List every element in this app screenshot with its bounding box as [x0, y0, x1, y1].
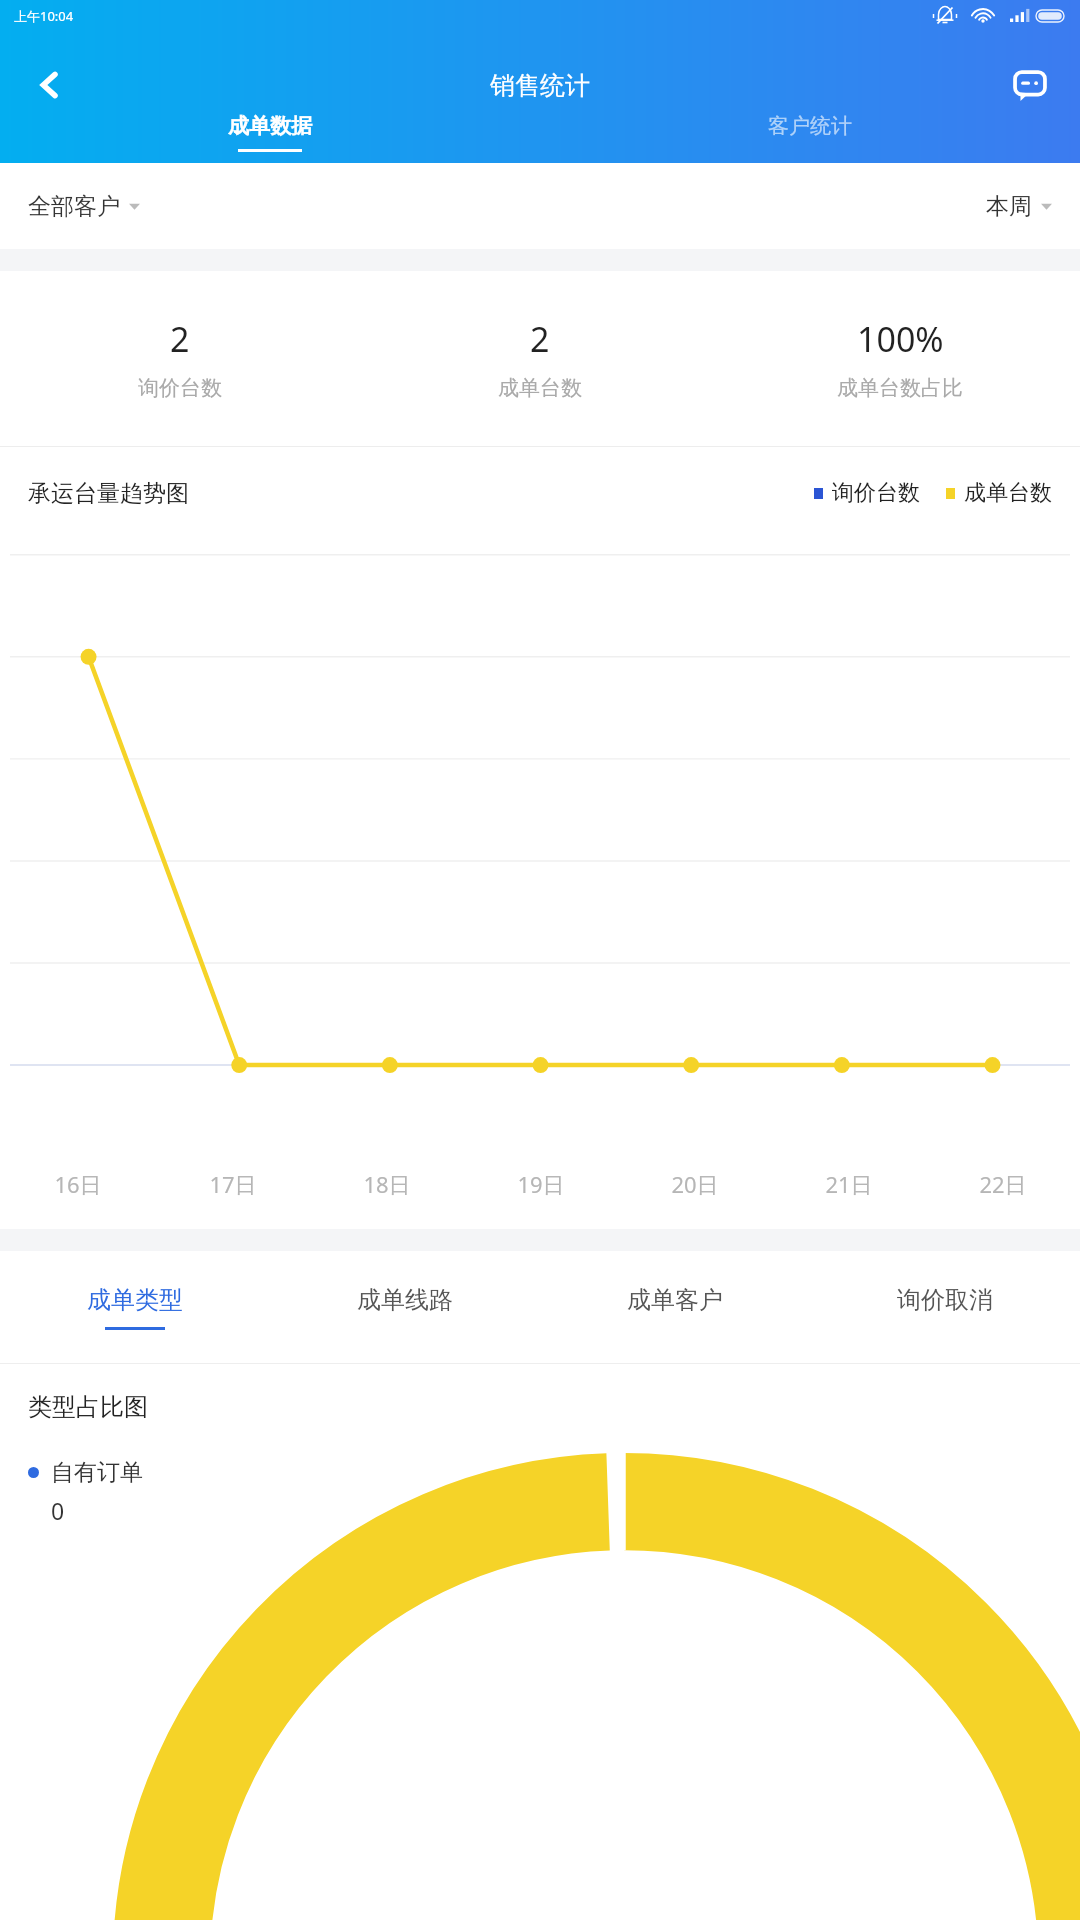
staticText: 本周 [986, 192, 1032, 221]
button[interactable]: Messages [1002, 57, 1058, 113]
button[interactable]: 成单数据 [0, 101, 540, 163]
staticText: 销售统计 [490, 70, 590, 101]
button[interactable]: 客户统计 [540, 101, 1080, 163]
staticText: 16日 [54, 1169, 102, 1199]
staticText: 询价台数 [832, 479, 920, 507]
staticText: 类型占比图 [28, 1392, 148, 1422]
staticText: 19日 [517, 1169, 565, 1199]
button[interactable]: 2 [0, 271, 360, 446]
button[interactable]: 2 [360, 271, 720, 446]
staticText: 22日 [979, 1169, 1027, 1199]
staticText: 2 [170, 316, 190, 362]
staticText: 成单客户 [627, 1285, 723, 1315]
staticText: 17日 [209, 1169, 257, 1199]
staticText: 客户统计 [768, 113, 852, 139]
staticText: 成单类型 [87, 1285, 183, 1315]
staticText: 100% [857, 316, 944, 362]
button[interactable]: 成单线路 [270, 1251, 540, 1363]
staticText: 询价台数 [138, 375, 222, 401]
staticText: 成单台数 [964, 479, 1052, 507]
staticText: 20日 [671, 1169, 719, 1199]
button[interactable]: 询价取消 [810, 1251, 1080, 1363]
staticText: 成单数据 [228, 113, 312, 139]
staticText: 18日 [363, 1169, 411, 1199]
staticText: 自有订单 [51, 1458, 143, 1487]
staticText: 成单台数占比 [837, 375, 963, 401]
staticText: 21日 [825, 1169, 873, 1199]
staticText: 承运台量趋势图 [28, 479, 189, 508]
staticText: 0 [51, 1495, 65, 1526]
staticText: 上午10:04 [14, 7, 74, 25]
staticText: 询价取消 [897, 1285, 993, 1315]
button[interactable]: 成单客户 [540, 1251, 810, 1363]
staticText: 成单线路 [357, 1285, 453, 1315]
button[interactable]: Back [22, 57, 78, 113]
button[interactable]: 本周 [986, 186, 1052, 227]
staticText: 成单台数 [498, 375, 582, 401]
button[interactable]: 成单台数 [946, 479, 1052, 507]
button[interactable]: 询价台数 [814, 479, 920, 507]
button[interactable]: 100% [720, 271, 1080, 446]
button[interactable]: 全部客户 [28, 186, 140, 227]
staticText: 2 [530, 316, 550, 362]
staticText: 全部客户 [28, 192, 120, 221]
button[interactable]: 成单类型 [0, 1251, 270, 1363]
